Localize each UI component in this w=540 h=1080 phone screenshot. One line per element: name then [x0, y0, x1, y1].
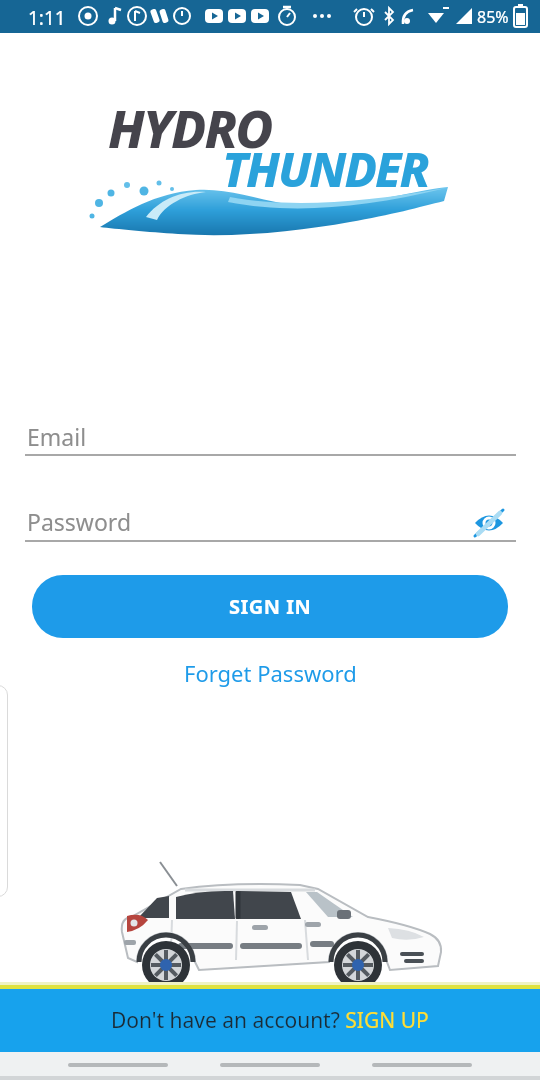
staticText: Email	[27, 421, 87, 452]
button[interactable]	[25, 412, 516, 458]
staticText: 1:11	[28, 5, 66, 31]
button[interactable]: Don't have an account? SIGN UP	[0, 989, 540, 1052]
button[interactable]	[473, 509, 505, 537]
button[interactable]: Forget Password	[184, 658, 357, 688]
button[interactable]: SIGN IN	[32, 575, 508, 638]
button[interactable]	[25, 498, 467, 544]
staticText: THUNDER	[222, 136, 428, 201]
staticText: Don't have an account? SIGN UP	[111, 1006, 429, 1035]
staticText: SIGN IN	[229, 593, 312, 620]
staticText: 85%	[477, 6, 509, 28]
staticText: HYDRO	[108, 92, 272, 163]
staticText: Password	[27, 506, 132, 537]
